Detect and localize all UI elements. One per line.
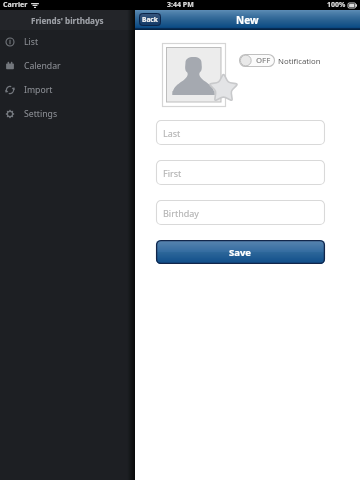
staticText: Back [142,15,158,24]
staticText: Settings [24,108,58,120]
button[interactable]: First [156,160,325,185]
staticText: 3:44 PM [167,0,194,10]
button[interactable]: OFF [239,54,275,67]
staticText: Carrier [3,0,28,10]
staticText: 100% [327,0,346,10]
button[interactable]: Calendar [0,54,135,78]
button[interactable]: Import [0,78,135,102]
staticText: New [236,13,259,27]
button[interactable]: Settings [0,102,135,126]
other: Favourite [207,72,240,105]
staticText: Calendar [24,60,61,72]
staticText: First [163,167,182,179]
button[interactable]: Last [156,120,325,145]
button[interactable]: List [0,30,135,54]
staticText: Import [24,84,53,96]
button[interactable]: Birthday [156,200,325,225]
staticText: Notification [278,56,321,67]
button[interactable]: Add photo [162,43,226,107]
staticText: List [24,36,39,48]
staticText: Friends' birthdays [31,15,104,26]
staticText: Last [163,127,181,139]
staticText: OFF [256,55,271,66]
staticText: Birthday [163,207,199,219]
button[interactable]: Back [139,13,161,26]
button[interactable]: Save [156,240,325,264]
staticText: Save [229,246,252,259]
